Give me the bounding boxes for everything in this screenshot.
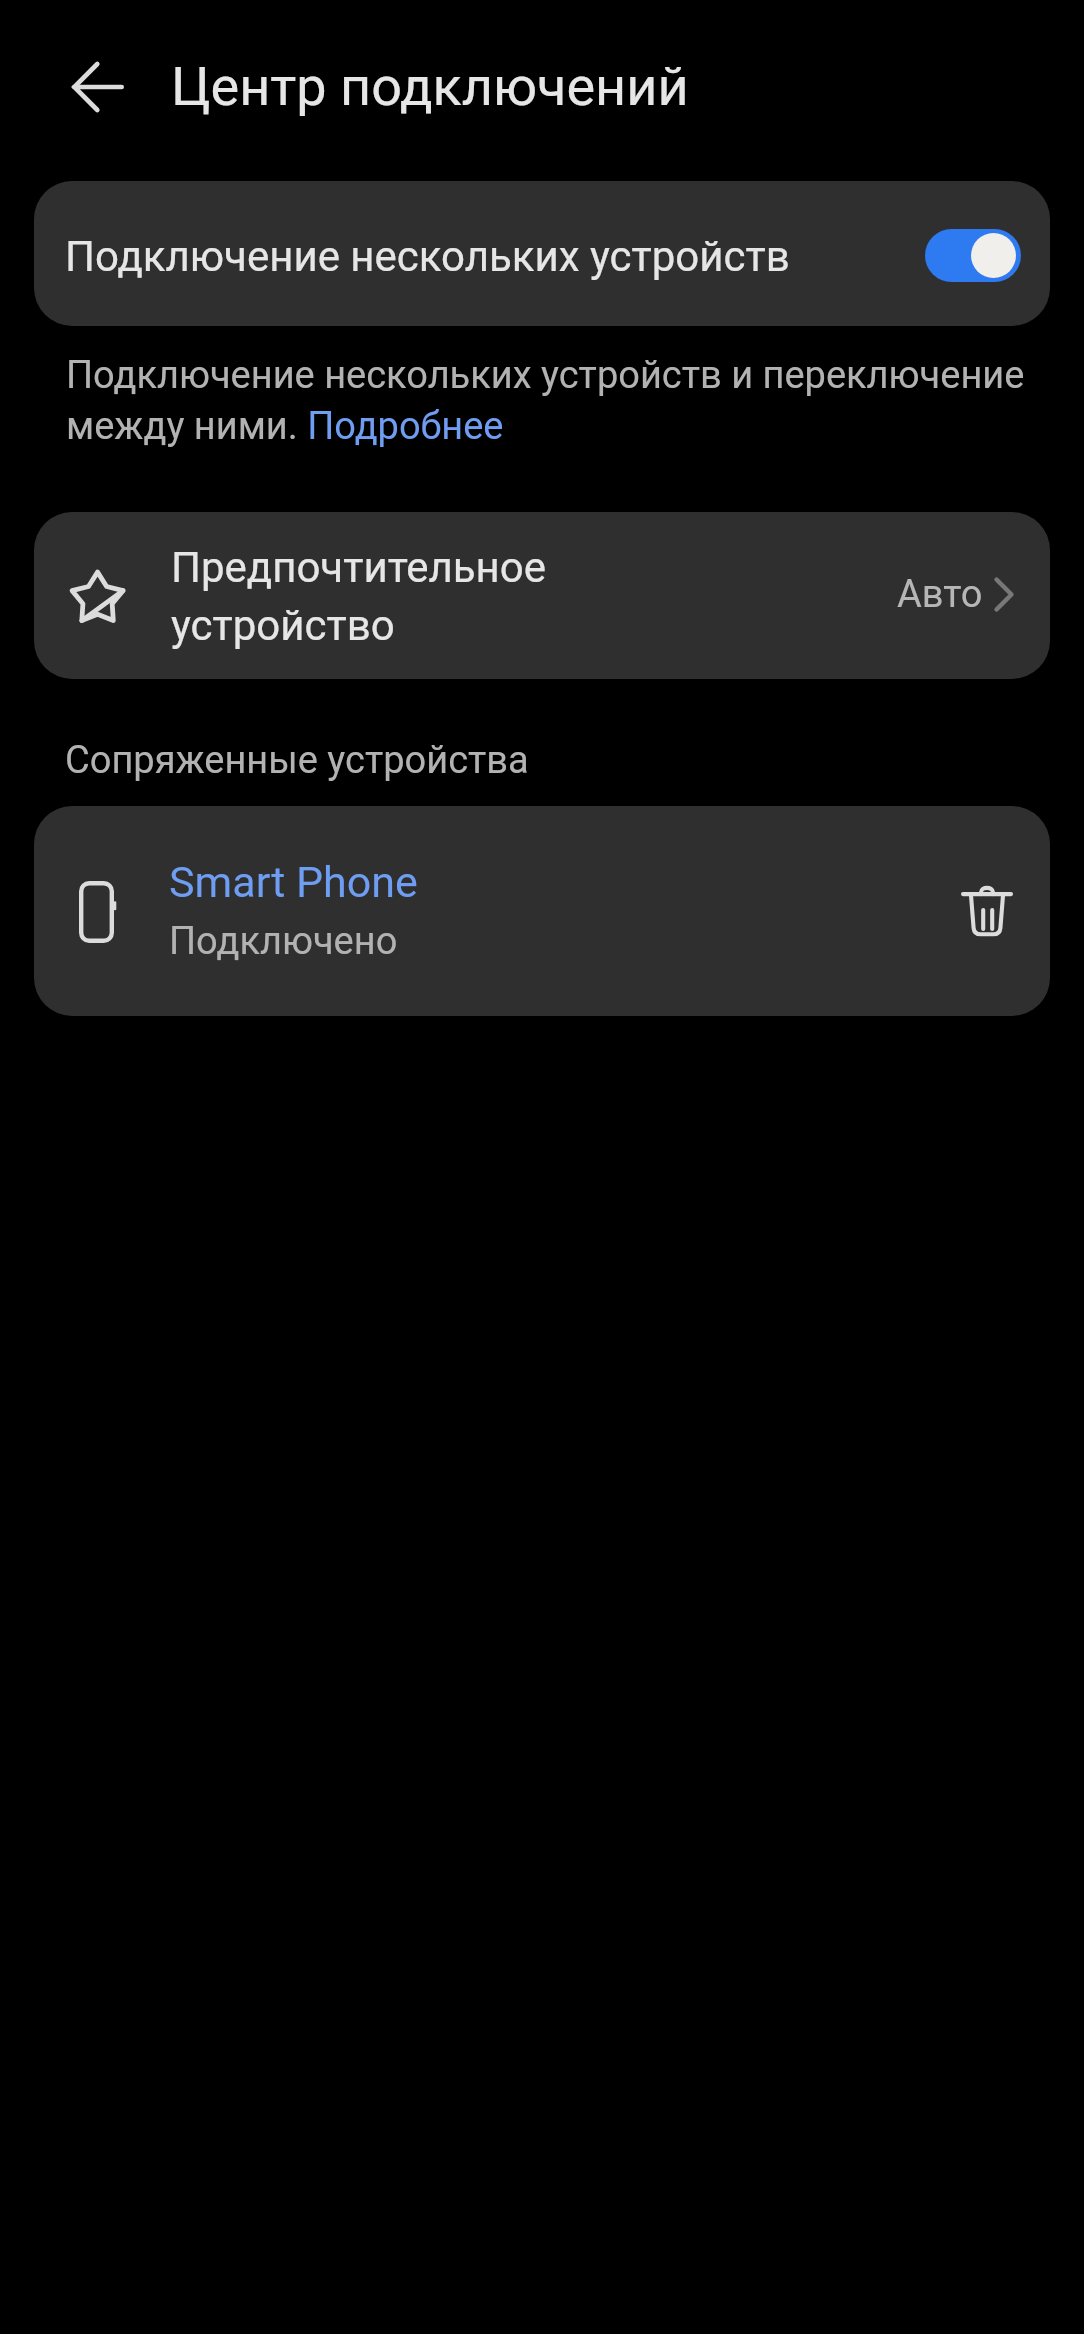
- button[interactable]: Предпочтительное: [34, 512, 1050, 679]
- staticText: Подключено: [169, 919, 398, 964]
- button[interactable]: Multi-device connection toggle: [925, 229, 1021, 282]
- staticText: Подключение нескольких устройств: [65, 232, 790, 281]
- staticText: Подключение нескольких устройств и перек…: [66, 353, 1050, 448]
- staticText: устройство: [171, 601, 395, 650]
- staticText: Сопряженные устройства: [65, 738, 529, 783]
- button[interactable]: Delete device: [937, 861, 1037, 961]
- staticText: Авто: [897, 572, 983, 617]
- button[interactable]: Smart Phone: [34, 806, 1050, 1016]
- button[interactable]: Подробнее: [303, 403, 503, 449]
- staticText: Smart Phone: [169, 857, 418, 907]
- staticText: Центр подключений: [171, 55, 689, 118]
- button[interactable]: Back: [48, 37, 148, 137]
- staticText: Предпочтительное: [171, 543, 547, 592]
- button[interactable]: Подключение нескольких устройств: [34, 181, 1050, 326]
